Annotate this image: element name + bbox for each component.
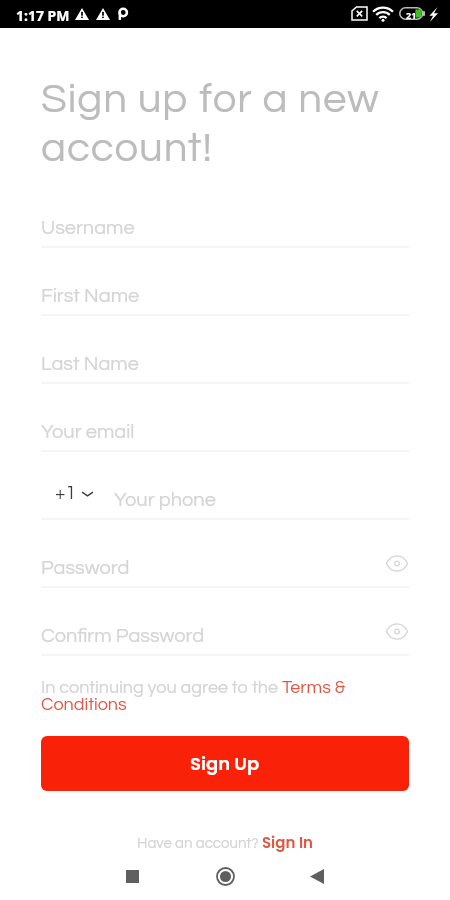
button[interactable]: Home <box>201 852 249 900</box>
button[interactable]: First Name <box>41 248 409 316</box>
staticText: +1 <box>55 483 76 503</box>
button[interactable]: Password <box>41 520 409 588</box>
button[interactable]: Confirm Password <box>41 588 409 656</box>
staticText: 1:17 PM <box>16 6 70 25</box>
staticText: Confirm Password <box>41 626 205 647</box>
button[interactable]: Show password <box>385 619 409 643</box>
button[interactable]: Your email <box>41 384 409 452</box>
staticText: Last Name <box>41 354 139 375</box>
button[interactable]: In continuing you agree to the Terms & C… <box>41 678 409 714</box>
staticText: 21 <box>406 9 417 21</box>
button[interactable]: Show password <box>385 551 409 575</box>
button[interactable]: Username <box>41 180 409 248</box>
staticText: Sign up for a new account! <box>41 78 428 169</box>
button[interactable]: Recent apps <box>108 852 156 900</box>
button[interactable]: Last Name <box>41 316 409 384</box>
staticText: First Name <box>41 286 140 307</box>
staticText: Sign Up <box>190 751 260 776</box>
staticText: Your email <box>41 422 135 443</box>
staticText: Password <box>41 558 130 579</box>
button[interactable]: Sign Up <box>41 736 409 791</box>
button[interactable]: Back <box>293 852 341 900</box>
button[interactable]: +1 <box>55 483 94 503</box>
staticText: Username <box>41 218 135 239</box>
button[interactable]: Have an account? Sign In <box>41 832 409 853</box>
staticText: Your phone <box>114 490 216 511</box>
